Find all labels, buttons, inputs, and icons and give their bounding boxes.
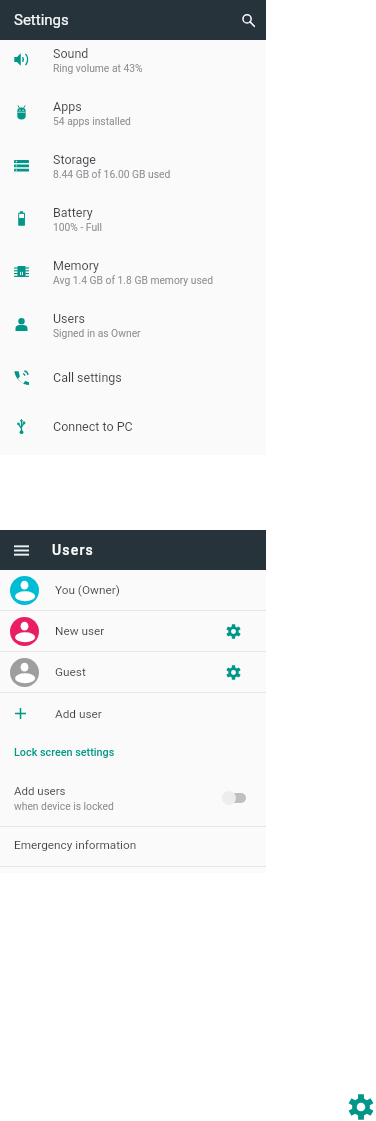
button[interactable]: Search xyxy=(230,0,266,40)
button[interactable]: Users xyxy=(0,298,266,351)
staticText: Add users xyxy=(14,784,66,797)
staticText: Memory xyxy=(53,258,99,273)
staticText: Users xyxy=(53,311,85,326)
button[interactable]: Navigation menu xyxy=(0,530,266,570)
staticText: You (Owner) xyxy=(55,583,120,597)
staticText: Guest xyxy=(55,665,86,679)
staticText: Battery xyxy=(53,205,93,220)
button[interactable]: Memory xyxy=(0,245,266,298)
button[interactable]: Guest xyxy=(0,652,266,692)
button[interactable]: Add users xyxy=(0,770,266,826)
button[interactable]: Emergency information xyxy=(0,827,266,863)
staticText: Avg 1.4 GB of 1.8 GB memory used xyxy=(53,274,214,286)
button[interactable]: Call settings xyxy=(0,351,266,404)
staticText: New user xyxy=(55,624,105,638)
button[interactable]: Settings xyxy=(347,1093,374,1120)
button[interactable]: Battery xyxy=(0,192,266,245)
staticText: Call settings xyxy=(53,370,122,385)
staticText: Signed in as Owner xyxy=(53,327,141,339)
staticText: Add user xyxy=(55,707,102,721)
button[interactable]: Navigation menu xyxy=(0,530,42,570)
button[interactable]: You (Owner) xyxy=(0,570,266,610)
button[interactable]: Sound xyxy=(0,33,266,86)
staticText: Sound xyxy=(53,46,89,61)
staticText: Ring volume at 43% xyxy=(53,62,143,74)
staticText: Storage xyxy=(53,152,96,167)
button[interactable]: Add user xyxy=(0,693,266,734)
staticText: Settings xyxy=(14,11,69,29)
button[interactable]: User settings xyxy=(213,611,253,651)
staticText: Emergency information xyxy=(14,838,137,852)
button[interactable]: Add users when device is locked xyxy=(210,770,258,826)
staticText: Lock screen settings xyxy=(14,746,115,759)
button[interactable]: New user xyxy=(0,611,266,651)
staticText: 100% - Full xyxy=(53,221,103,233)
staticText: Connect to PC xyxy=(53,419,133,434)
button[interactable]: User settings xyxy=(213,652,253,692)
staticText: when device is locked xyxy=(14,800,114,812)
button[interactable]: Settings xyxy=(0,0,266,40)
button[interactable]: Storage xyxy=(0,139,266,192)
button[interactable]: Connect to PC xyxy=(0,404,266,448)
button[interactable]: Apps xyxy=(0,86,266,139)
staticText: 54 apps installed xyxy=(53,115,131,127)
staticText: Apps xyxy=(53,99,82,114)
staticText: 8.44 GB of 16.00 GB used xyxy=(53,168,171,180)
staticText: Users xyxy=(52,542,95,558)
